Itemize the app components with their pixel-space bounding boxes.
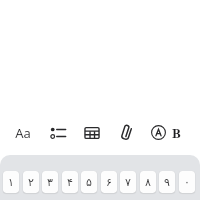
- staticText: Aa: [15, 124, 31, 142]
- button[interactable]: B: [172, 113, 186, 152]
- staticText: ۱: [8, 176, 14, 189]
- button[interactable]: ۴: [62, 171, 78, 193]
- staticText: B: [172, 124, 181, 142]
- button[interactable]: Insert table: [76, 113, 108, 152]
- button[interactable]: ۱: [3, 171, 19, 193]
- staticText: ۳: [47, 176, 53, 189]
- button[interactable]: ۹: [159, 171, 175, 193]
- staticText: ۰: [184, 176, 190, 189]
- button[interactable]: ۰: [179, 171, 195, 193]
- button[interactable]: ۶: [101, 171, 117, 193]
- staticText: ۹: [164, 176, 170, 189]
- staticText: ۶: [106, 176, 112, 189]
- staticText: ۸: [145, 176, 151, 189]
- staticText: ۲: [28, 176, 34, 189]
- button[interactable]: ۵: [81, 171, 97, 193]
- staticText: ۵: [86, 176, 92, 189]
- staticText: ۷: [125, 176, 131, 189]
- button[interactable]: Aa: [4, 113, 42, 152]
- button[interactable]: ۳: [42, 171, 58, 193]
- staticText: ۴: [67, 176, 73, 189]
- button[interactable]: Markup: [143, 113, 173, 152]
- button[interactable]: ۲: [23, 171, 39, 193]
- button[interactable]: ۸: [140, 171, 156, 193]
- button[interactable]: Attach file: [110, 113, 142, 152]
- button[interactable]: Bulleted list: [42, 113, 74, 152]
- button[interactable]: ۷: [120, 171, 136, 193]
